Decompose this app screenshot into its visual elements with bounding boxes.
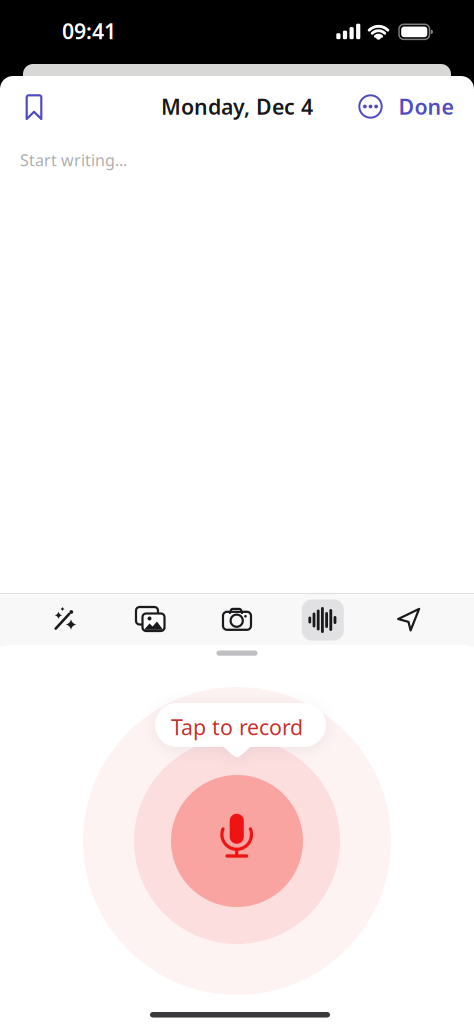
- button[interactable]: Add location: [384, 597, 432, 641]
- button[interactable]: Photo library: [124, 597, 172, 641]
- button[interactable]: Audio recording: [301, 598, 345, 641]
- staticText: Tap to record: [171, 713, 303, 741]
- button[interactable]: Camera: [213, 597, 261, 641]
- button[interactable]: Done: [386, 86, 466, 126]
- button[interactable]: Bookmark: [12, 87, 56, 127]
- button[interactable]: Record: [171, 775, 303, 907]
- staticText: 09:41: [62, 17, 116, 45]
- staticText: Monday, Dec 4: [161, 92, 313, 121]
- button[interactable]: More: [350, 86, 390, 126]
- staticText: Done: [398, 92, 453, 121]
- button[interactable]: Writing tools: [40, 597, 88, 641]
- staticText: Start writing...: [20, 149, 127, 171]
